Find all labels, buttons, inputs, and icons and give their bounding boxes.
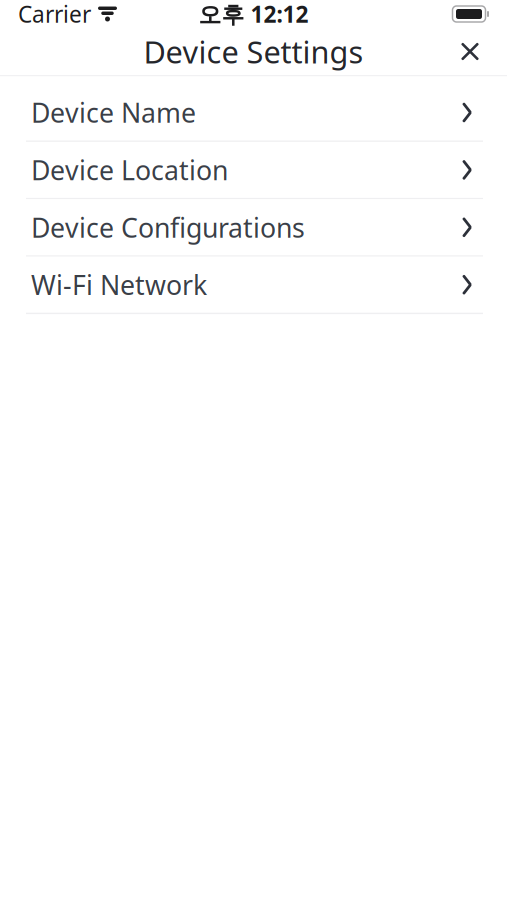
staticText: 오후 12:12 — [198, 0, 308, 29]
button[interactable]: Device Location — [0, 142, 507, 198]
staticText: Device Name — [31, 95, 196, 130]
staticText: Carrier — [18, 0, 91, 29]
button[interactable]: Close — [447, 28, 493, 74]
staticText: Device Configurations — [31, 210, 305, 245]
staticText: Wi-Fi Network — [31, 267, 207, 302]
button[interactable]: Device Configurations — [0, 199, 507, 255]
button[interactable]: Wi-Fi Network — [0, 257, 507, 313]
staticText: Device Settings — [143, 31, 363, 72]
button[interactable]: Device Name — [0, 84, 507, 140]
staticText: Device Location — [31, 152, 228, 188]
